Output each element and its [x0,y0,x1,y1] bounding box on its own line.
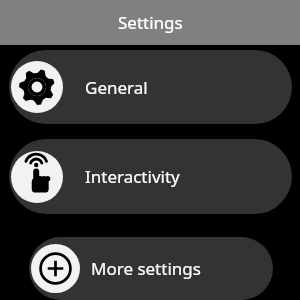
other: Interactivity settings [11,151,63,203]
button[interactable]: General settings [9,50,292,124]
button[interactable]: Interactivity settings [9,139,292,214]
staticText: Interactivity [85,165,180,188]
other: More settings [31,244,80,293]
staticText: More settings [91,257,201,280]
staticText: General [85,76,148,99]
other: General settings [11,61,63,113]
button[interactable]: More settings [29,237,273,300]
staticText: Settings [118,11,183,34]
